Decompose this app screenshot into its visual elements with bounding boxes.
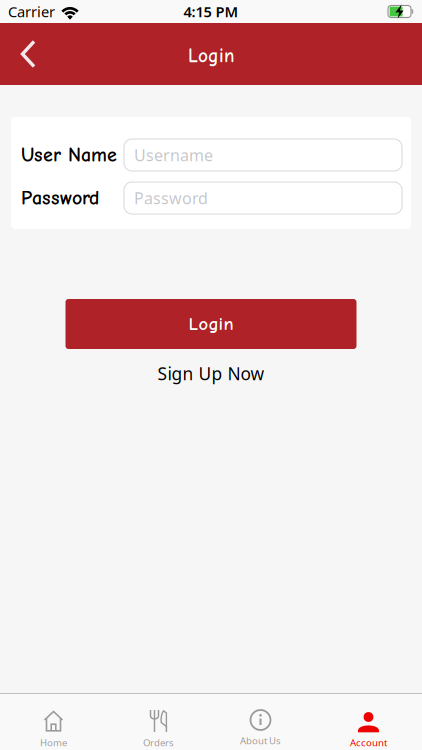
staticText: Carrier — [8, 2, 55, 21]
staticText: Password — [134, 187, 208, 209]
staticText: Login — [188, 45, 234, 67]
button[interactable]: Login — [65, 299, 356, 349]
button[interactable]: Orders — [106, 694, 211, 750]
button[interactable]: About Us — [208, 694, 313, 750]
button[interactable]: Account — [316, 694, 421, 750]
staticText: Home — [40, 736, 67, 749]
staticText: Password — [21, 186, 99, 209]
staticText: User Name — [21, 143, 117, 166]
button[interactable]: Sign Up Now — [157, 349, 264, 385]
staticText: Orders — [143, 736, 174, 749]
staticText: Sign Up Now — [157, 362, 264, 385]
staticText: Account — [350, 736, 387, 749]
staticText: Username — [134, 144, 213, 166]
staticText: 4:15 PM — [183, 2, 238, 21]
button[interactable]: Home — [1, 694, 106, 750]
staticText: About Us — [240, 734, 281, 747]
staticText: Login — [188, 313, 233, 335]
button[interactable] — [0, 23, 37, 84]
